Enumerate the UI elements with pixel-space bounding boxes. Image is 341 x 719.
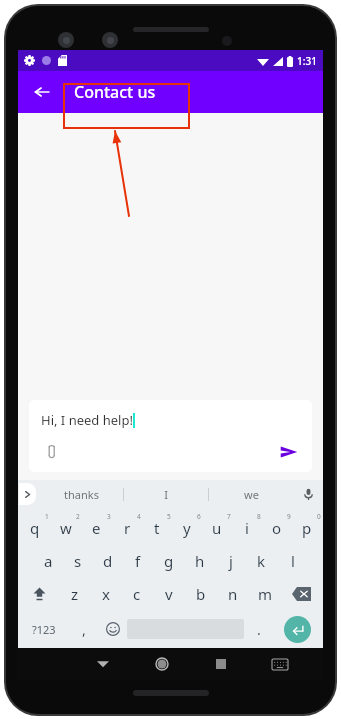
button[interactable]: Home <box>132 648 191 680</box>
staticText: x <box>102 584 110 604</box>
button[interactable]: ?123 <box>19 610 69 648</box>
button[interactable]: Contact us <box>74 81 156 103</box>
button[interactable]: , <box>69 610 98 648</box>
button[interactable]: m <box>249 577 281 610</box>
button[interactable]: Back <box>73 648 132 680</box>
staticText: z <box>71 584 79 604</box>
button[interactable]: b <box>185 577 217 610</box>
button[interactable]: q <box>19 511 50 544</box>
button[interactable]: Back <box>26 76 58 108</box>
staticText: 1 <box>45 512 49 521</box>
button[interactable]: . <box>244 610 273 648</box>
button[interactable]: thanks <box>40 480 123 508</box>
button[interactable]: n <box>217 577 249 610</box>
staticText: 0 <box>317 512 321 521</box>
staticText: o <box>272 518 282 538</box>
staticText: 3 <box>107 512 111 521</box>
staticText: p <box>302 518 312 538</box>
staticText: . <box>257 620 261 639</box>
staticText: 7 <box>227 512 231 521</box>
staticText: 2 <box>76 512 80 521</box>
staticText: m <box>258 584 273 604</box>
button[interactable]: r <box>112 511 142 544</box>
button[interactable]: Switch keyboard <box>250 648 309 680</box>
staticText: r <box>124 518 131 538</box>
button[interactable]: c <box>121 577 153 610</box>
staticText: u <box>212 518 222 538</box>
button[interactable]: Attach file <box>41 441 63 463</box>
button[interactable]: y <box>172 511 202 544</box>
button[interactable]: s <box>63 544 93 577</box>
button[interactable]: a <box>33 544 63 577</box>
button[interactable]: More suggestions <box>19 483 36 505</box>
button[interactable]: t <box>142 511 172 544</box>
staticText: , <box>82 620 86 639</box>
staticText: 5 <box>167 512 171 521</box>
staticText: w <box>60 518 72 538</box>
staticText: 9 <box>287 512 291 521</box>
staticText: h <box>195 551 205 571</box>
staticText: d <box>103 551 113 571</box>
button[interactable]: o <box>262 511 292 544</box>
staticText: 4 <box>137 512 141 521</box>
staticText: b <box>196 584 206 604</box>
staticText: f <box>135 551 141 571</box>
button[interactable]: x <box>90 577 121 610</box>
button[interactable]: v <box>153 577 185 610</box>
staticText: l <box>291 551 295 571</box>
button[interactable]: z <box>59 577 90 610</box>
staticText: Hi, I need help! <box>41 411 133 429</box>
button[interactable]: u <box>202 511 232 544</box>
button[interactable]: Hi, I need help! <box>29 400 312 472</box>
staticText: 6 <box>197 512 201 521</box>
staticText: v <box>165 584 173 604</box>
button[interactable]: g <box>153 544 184 577</box>
staticText: Contact us <box>74 81 156 103</box>
staticText: c <box>133 584 141 604</box>
staticText: I <box>164 487 168 502</box>
staticText: j <box>229 551 233 571</box>
staticText: 8 <box>257 512 261 521</box>
staticText: k <box>257 551 266 571</box>
button[interactable]: we <box>209 480 293 508</box>
staticText: ?123 <box>32 622 56 637</box>
staticText: n <box>228 584 238 604</box>
button[interactable]: e <box>81 511 112 544</box>
staticText: 1:31 <box>297 54 317 68</box>
button[interactable]: h <box>184 544 215 577</box>
button[interactable]: Enter <box>273 610 322 648</box>
button[interactable]: d <box>93 544 123 577</box>
staticText: we <box>244 487 259 502</box>
button[interactable]: l <box>277 544 308 577</box>
staticText: a <box>44 551 53 571</box>
staticText: s <box>74 551 82 571</box>
button[interactable]: w <box>50 511 81 544</box>
button[interactable]: i <box>232 511 262 544</box>
button[interactable]: I <box>124 480 208 508</box>
staticText: y <box>183 518 191 538</box>
button[interactable]: Voice input <box>299 485 317 503</box>
button[interactable]: Emoji <box>98 610 127 648</box>
staticText: g <box>164 551 174 571</box>
button[interactable]: Backspace <box>281 577 322 610</box>
staticText: q <box>30 518 40 538</box>
button[interactable]: Recent apps <box>191 648 250 680</box>
button[interactable]: Shift <box>19 577 59 610</box>
staticText: thanks <box>64 487 99 502</box>
staticText: i <box>245 518 249 538</box>
staticText: t <box>154 518 160 538</box>
button[interactable]: f <box>123 544 153 577</box>
staticText: e <box>92 518 101 538</box>
button[interactable]: j <box>215 544 246 577</box>
button[interactable]: p <box>292 511 322 544</box>
button[interactable]: Send <box>276 439 302 465</box>
button[interactable]: k <box>246 544 277 577</box>
